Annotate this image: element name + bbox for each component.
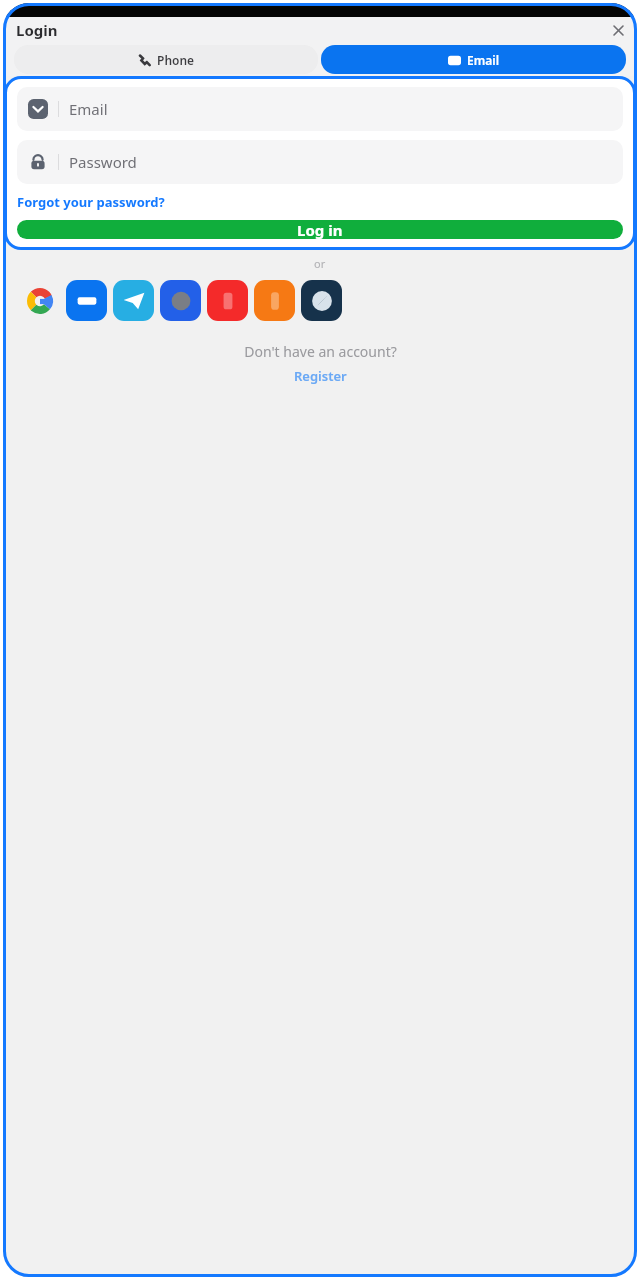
staticText: Don't have an account? xyxy=(244,342,397,361)
button[interactable]: Password xyxy=(17,140,623,184)
button[interactable]: Sign in with Google xyxy=(19,280,60,321)
button[interactable]: Sign in with Odnoklassniki xyxy=(254,280,295,321)
staticText: Email xyxy=(69,99,108,119)
button[interactable]: Register xyxy=(294,367,347,385)
button[interactable]: Sign in with VK xyxy=(66,280,107,321)
button[interactable]: Phone xyxy=(14,45,318,74)
button[interactable]: Forgot your password? xyxy=(17,193,165,211)
button[interactable]: Sign in with Yandex xyxy=(207,280,248,321)
staticText: Password xyxy=(69,152,137,172)
button[interactable]: Log in xyxy=(17,220,623,239)
staticText: Email xyxy=(467,52,500,68)
staticText: Log in xyxy=(297,220,343,239)
button[interactable]: Close xyxy=(609,21,627,39)
staticText: Phone xyxy=(157,52,195,68)
button[interactable]: Sign in with Apple xyxy=(301,280,342,321)
button[interactable]: Sign in with Facebook xyxy=(160,280,201,321)
staticText: or xyxy=(314,256,326,271)
button[interactable]: Email xyxy=(17,87,623,131)
staticText: Login xyxy=(16,20,58,40)
button[interactable]: Email xyxy=(321,45,626,74)
button[interactable]: Sign in with Telegram xyxy=(113,280,154,321)
